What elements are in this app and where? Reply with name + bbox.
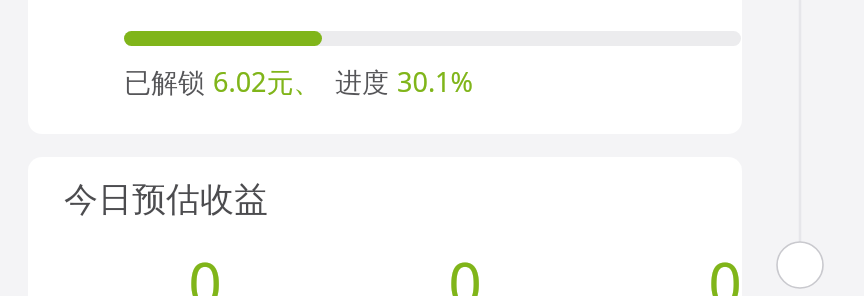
- staticText: 30.1%: [397, 63, 474, 100]
- staticText: 0: [708, 243, 742, 296]
- button[interactable]: [28, 157, 742, 296]
- button[interactable]: 0: [685, 243, 765, 296]
- button[interactable]: 已解锁: [124, 63, 474, 100]
- staticText: 0: [448, 243, 482, 296]
- other: Scroll position: [770, 0, 830, 296]
- staticText: 已解锁: [124, 63, 213, 100]
- staticText: 0: [188, 243, 222, 296]
- button[interactable]: [28, 0, 742, 134]
- staticText: 进度: [321, 63, 397, 100]
- staticText: 今日预估收益: [64, 178, 268, 221]
- button[interactable]: 0: [165, 243, 245, 296]
- staticText: 6.02元、: [213, 63, 321, 100]
- button[interactable]: 0: [425, 243, 505, 296]
